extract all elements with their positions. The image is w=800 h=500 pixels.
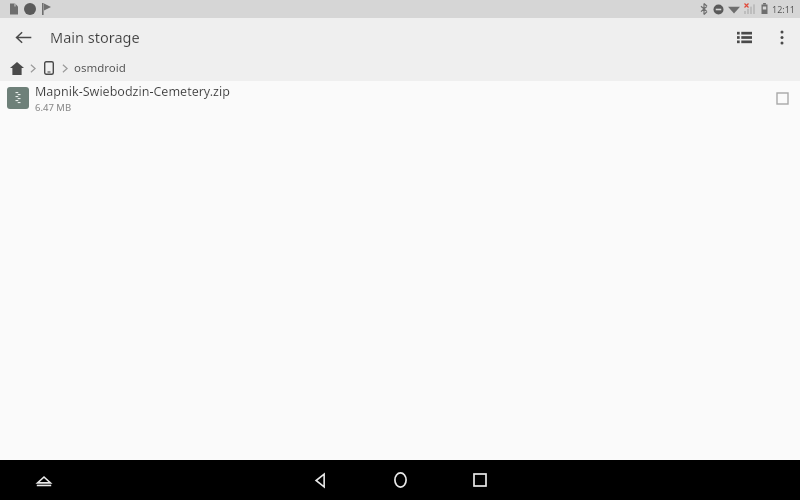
- button[interactable]: Home: [368, 461, 432, 499]
- button[interactable]: Back: [288, 461, 352, 499]
- button[interactable]: Hide keyboard: [27, 463, 61, 497]
- button[interactable]: More options: [766, 21, 798, 53]
- staticText: osmdroid: [74, 60, 126, 76]
- staticText: Mapnik-Swiebodzin-Cemetery.zip: [35, 83, 230, 100]
- button[interactable]: Select file: [767, 83, 797, 113]
- button[interactable]: Main storage: [41, 60, 57, 76]
- staticText: 12:11: [772, 3, 796, 15]
- button[interactable]: Recent apps: [448, 461, 512, 499]
- button[interactable]: Mapnik-Swiebodzin-Cemetery.zip: [0, 81, 800, 115]
- staticText: 6.47 MB: [35, 101, 72, 114]
- staticText: Main storage: [50, 27, 140, 47]
- button[interactable]: osmdroid: [74, 60, 126, 76]
- button[interactable]: Navigate up: [8, 22, 38, 52]
- button[interactable]: Change view: [727, 20, 761, 54]
- button[interactable]: Home: [9, 60, 25, 76]
